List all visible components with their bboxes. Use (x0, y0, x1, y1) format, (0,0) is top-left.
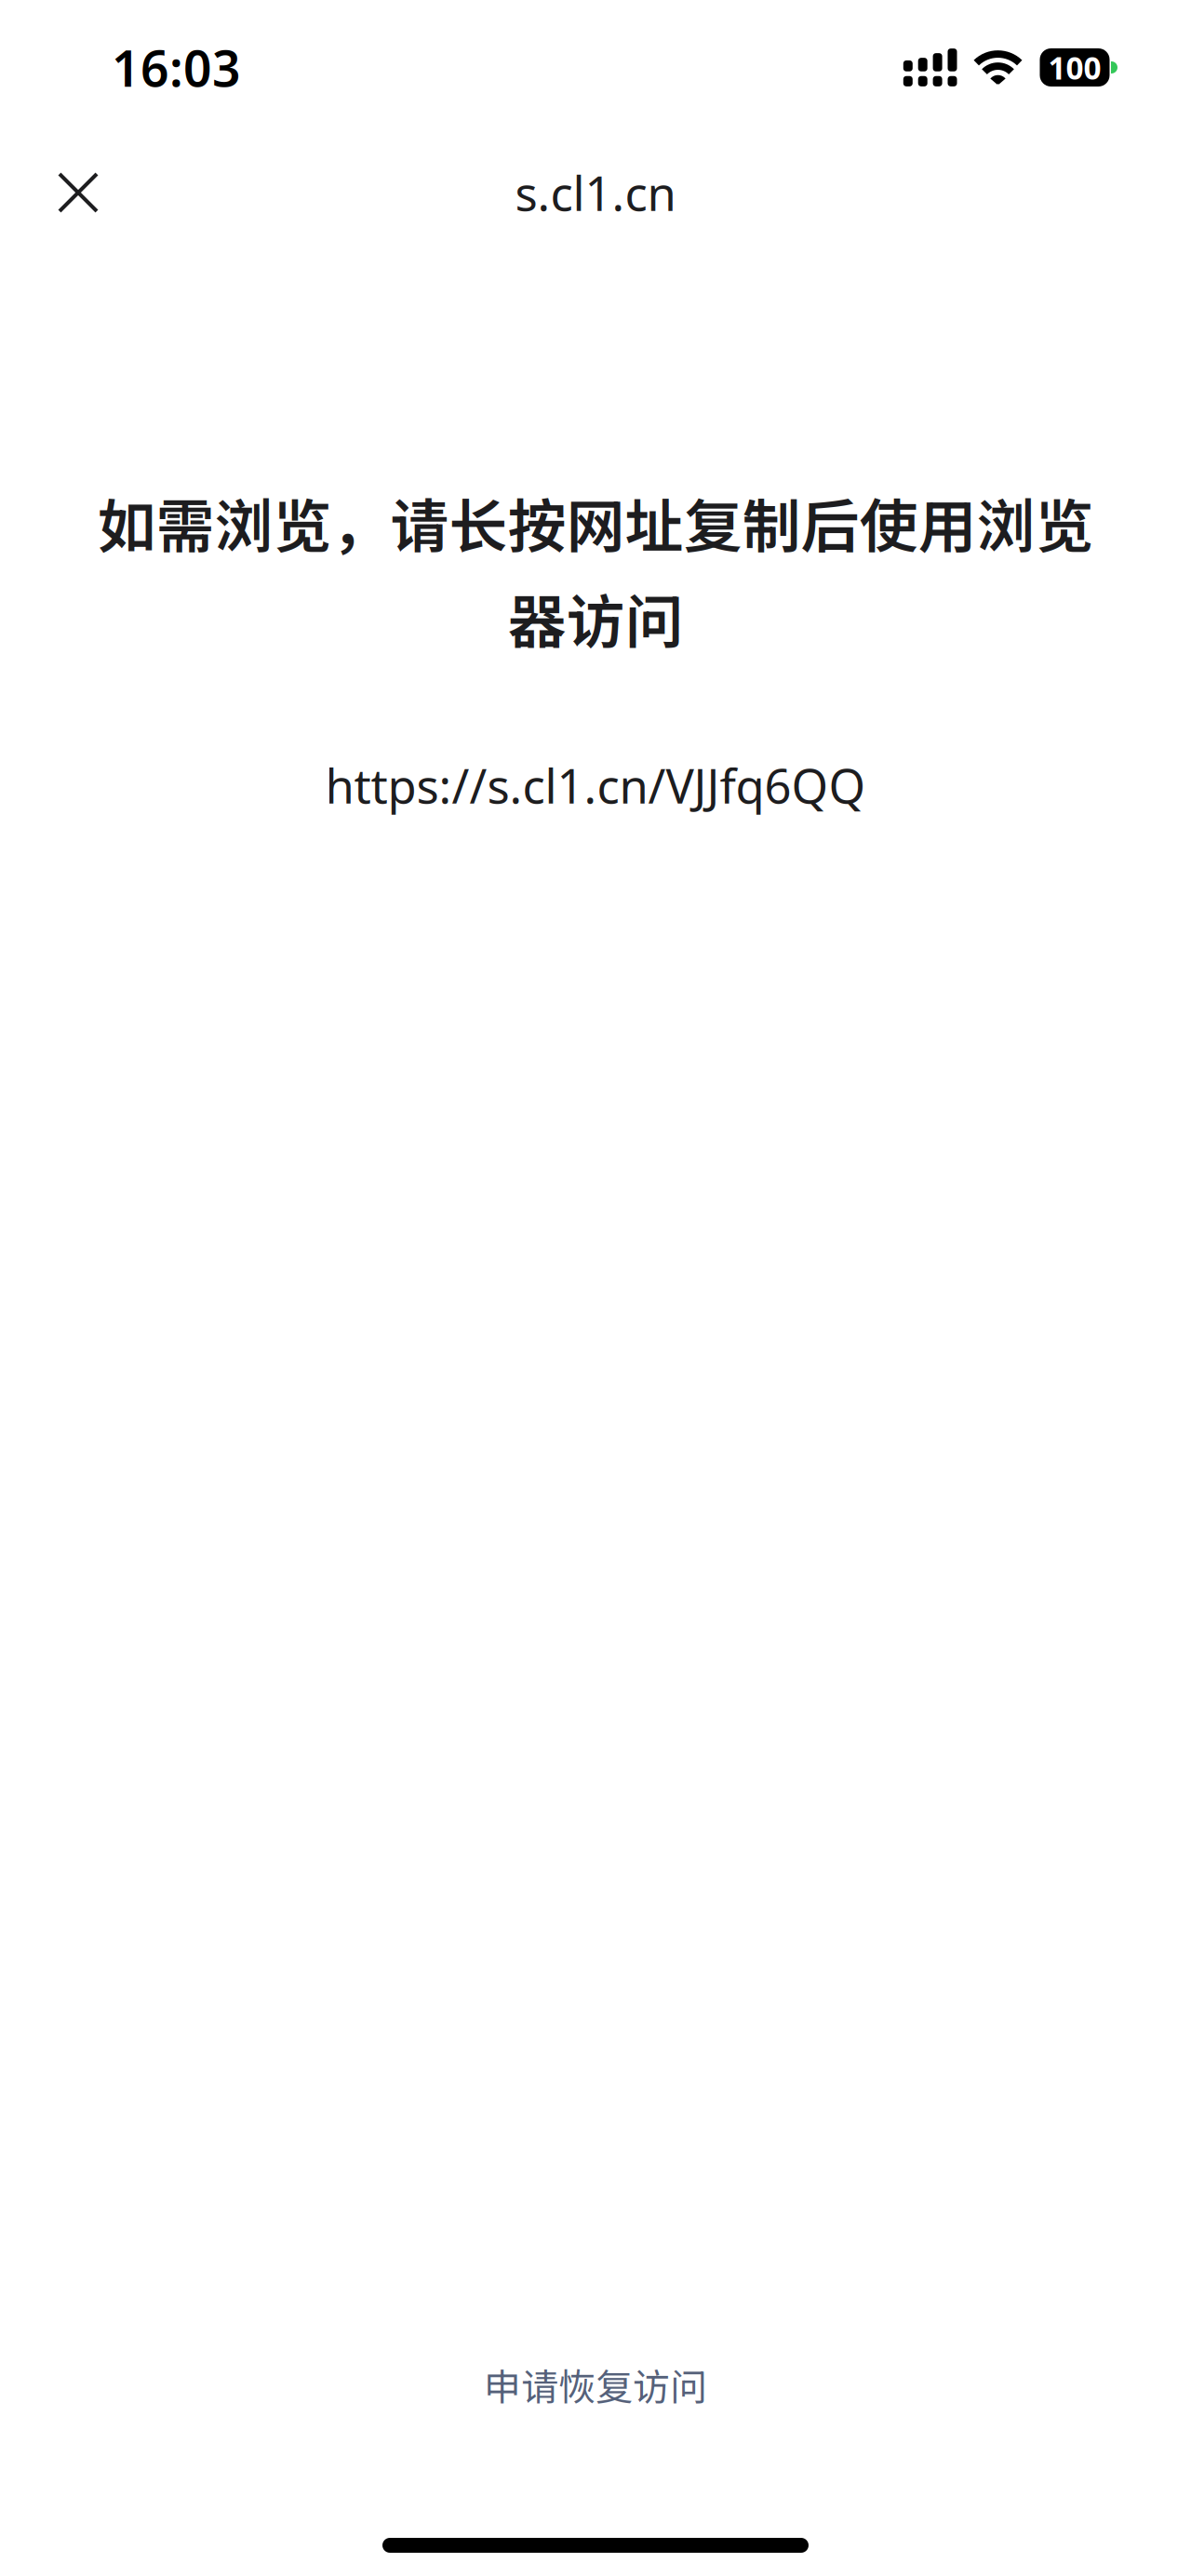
staticText: s.cl1.cn (515, 161, 676, 224)
staticText: 如需浏览，请长按网址复制后使用浏览器访问 (97, 480, 1094, 660)
staticText: https://s.cl1.cn/VJJfq6QQ (325, 754, 866, 817)
staticText: 100 (1048, 47, 1101, 88)
button[interactable]: Close (39, 153, 117, 232)
button[interactable]: 申请恢复访问 (447, 2341, 744, 2428)
staticText: 16:03 (112, 35, 241, 100)
staticText: 申请恢复访问 (484, 2357, 707, 2411)
